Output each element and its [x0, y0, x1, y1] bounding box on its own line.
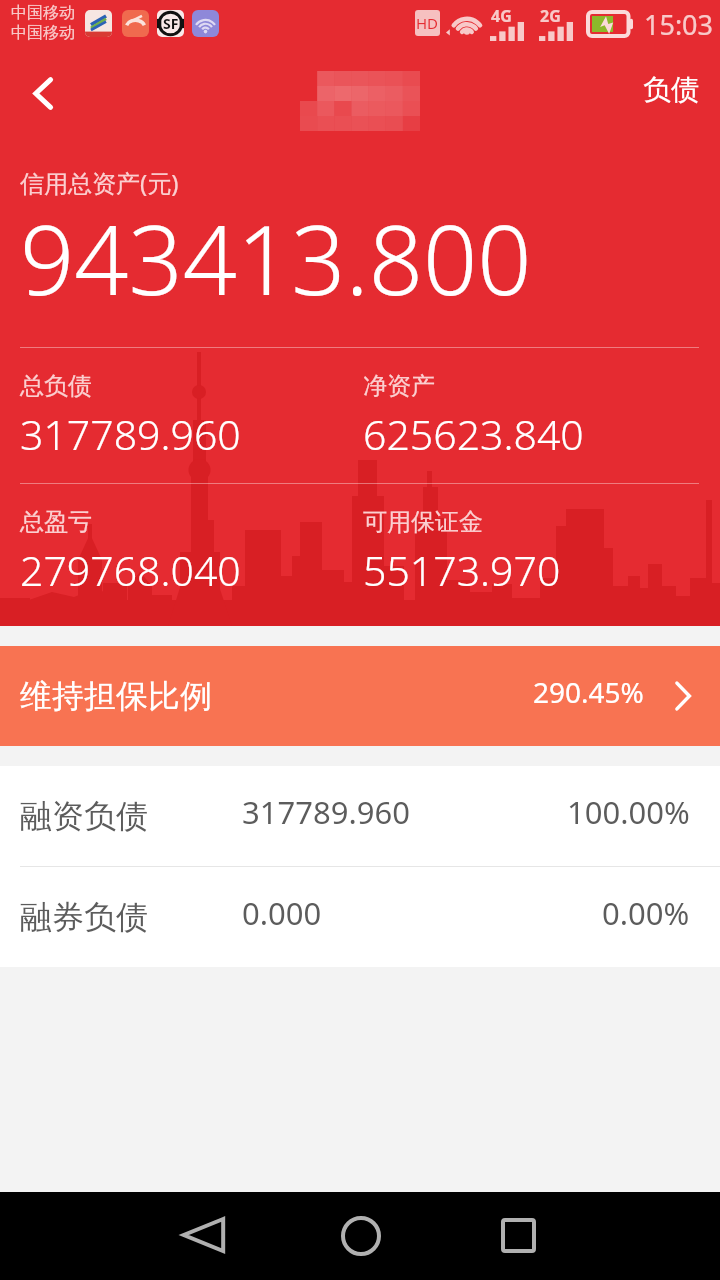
- staticText: 317789.960: [242, 791, 567, 833]
- staticText: 维持担保比例: [20, 676, 212, 716]
- staticText: 317789.960: [20, 406, 241, 462]
- staticText: 0.00%: [602, 892, 690, 934]
- staticText: HD: [416, 13, 439, 33]
- staticText: 总盈亏: [20, 507, 92, 537]
- staticText: 总负债: [20, 371, 92, 401]
- staticText: 15:03: [644, 6, 714, 43]
- staticText: 290.45%: [533, 673, 644, 711]
- button[interactable]: 融资负债: [0, 766, 720, 866]
- staticText: 100.00%: [567, 791, 690, 833]
- staticText: SF: [163, 14, 179, 33]
- button[interactable]: 负债: [622, 54, 720, 125]
- button[interactable]: 维持担保比例: [0, 646, 720, 746]
- staticText: 融券负债: [20, 897, 242, 937]
- staticText: 0.000: [242, 892, 602, 934]
- staticText: 融资负债: [20, 796, 242, 836]
- button[interactable]: 融券负债: [0, 867, 720, 967]
- staticText: 信用总资产(元): [20, 166, 179, 199]
- staticText: 可用保证金: [363, 507, 483, 537]
- staticText: 4G: [491, 5, 512, 27]
- staticText: 625623.840: [363, 406, 584, 462]
- staticText: 中国移动: [11, 3, 75, 23]
- staticText: 负债: [643, 72, 699, 107]
- button[interactable]: Recents: [478, 1195, 558, 1275]
- button[interactable]: Home: [321, 1196, 401, 1276]
- button[interactable]: Back: [163, 1195, 243, 1275]
- staticText: 2G: [540, 5, 561, 27]
- staticText: 279768.040: [20, 542, 241, 598]
- button[interactable]: Back: [0, 50, 85, 143]
- staticText: 中国移动: [11, 23, 75, 43]
- staticText: 943413.800: [20, 193, 532, 322]
- staticText: 净资产: [363, 371, 435, 401]
- staticText: 55173.970: [363, 542, 561, 598]
